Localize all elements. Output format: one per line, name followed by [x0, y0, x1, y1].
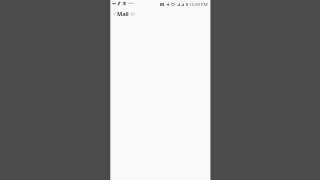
button[interactable]: More options: [130, 12, 134, 16]
staticText: 12:30 PM: [189, 1, 208, 7]
button[interactable]: Navigate up: [111, 9, 117, 18]
button[interactable]: Mail: [117, 10, 129, 18]
staticText: Mail: [117, 10, 129, 18]
